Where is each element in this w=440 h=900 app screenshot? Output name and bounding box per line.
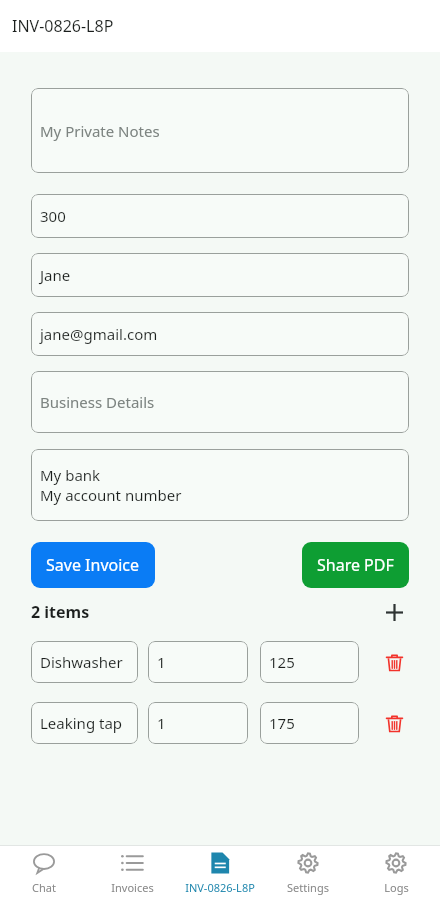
button[interactable]: 1 [148,641,248,683]
staticText: 300 [40,206,66,226]
button[interactable]: 125 [260,641,359,683]
staticText: Save Invoice [46,554,140,576]
button[interactable]: Jane [31,253,409,297]
staticText: Jane [40,265,71,285]
button[interactable]: Dishwasher [31,641,138,683]
button[interactable]: 1 [148,702,248,744]
button[interactable]: Delete item [379,647,409,677]
button[interactable]: Save Invoice [31,542,155,588]
staticText: Dishwasher [40,652,123,672]
button[interactable]: Business Details [31,371,409,433]
staticText: My bank [40,465,101,485]
button[interactable]: Current invoice [176,845,264,900]
staticText: Business Details [40,392,155,412]
staticText: My account number [40,485,182,505]
staticText: Share PDF [317,554,394,576]
staticText: 125 [269,652,295,672]
button[interactable]: jane@gmail.com [31,312,409,356]
button[interactable]: My bank [31,449,409,521]
staticText: Chat [32,880,56,895]
staticText: 1 [157,652,166,672]
staticText: Settings [287,880,329,895]
staticText: INV-0826-L8P [12,15,114,37]
button[interactable]: Logs [352,845,440,900]
button[interactable]: 300 [31,194,409,238]
staticText: 175 [269,713,295,733]
button[interactable]: My Private Notes [31,88,409,173]
staticText: Invoices [111,880,154,895]
button[interactable]: Chat [0,845,88,900]
staticText: INV-0826-L8P [185,880,255,895]
staticText: Leaking tap [40,713,123,733]
staticText: Logs [384,880,409,895]
button[interactable]: Invoices [88,845,176,900]
staticText: My Private Notes [40,121,160,141]
staticText: 2 items [31,601,90,623]
button[interactable]: 175 [260,702,359,744]
staticText: 1 [157,713,166,733]
staticText: jane@gmail.com [40,324,158,344]
button[interactable]: Leaking tap [31,702,138,744]
button[interactable]: Delete item [379,708,409,738]
button[interactable]: Add item [379,597,409,627]
button[interactable]: Settings [264,845,352,900]
button[interactable]: Share PDF [302,542,409,588]
